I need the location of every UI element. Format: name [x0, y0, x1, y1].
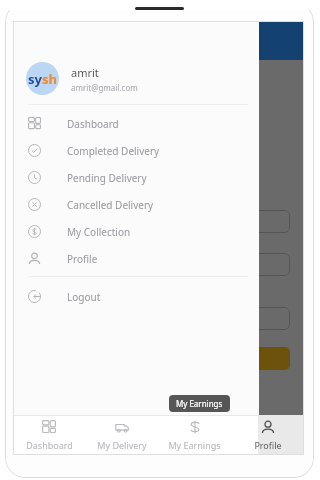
other: Navigation drawer — [13, 21, 259, 455]
button[interactable]: Update Profile — [27, 347, 290, 370]
staticText: My Delivery — [97, 439, 147, 451]
staticText: Profile — [67, 252, 98, 266]
button[interactable]: Profile — [13, 245, 259, 272]
staticText: My Earnings — [176, 398, 223, 409]
button[interactable]: Logout — [13, 283, 259, 310]
button[interactable]: Dashboard — [13, 416, 85, 455]
staticText: Logout — [67, 290, 101, 304]
staticText: My Collection — [67, 225, 131, 239]
button[interactable]: Completed Delivery — [13, 137, 259, 164]
staticText: Profile — [254, 439, 282, 451]
button[interactable]: sy — [13, 62, 259, 95]
staticText: amrit@gmail.com — [71, 82, 138, 93]
staticText: My Earnings — [168, 439, 221, 451]
staticText: Pending Delivery — [67, 171, 147, 185]
button[interactable]: Cancelled Delivery — [13, 191, 259, 218]
button[interactable]: My Delivery — [85, 416, 158, 455]
staticText: Dashboard — [26, 439, 73, 451]
staticText: sh — [42, 70, 57, 88]
button[interactable]: Dashboard — [13, 110, 259, 137]
staticText: Completed Delivery — [67, 144, 160, 158]
staticText: amrit — [71, 65, 99, 80]
staticText: Dashboard — [67, 117, 119, 131]
button[interactable]: My Collection — [13, 218, 259, 245]
staticText: Cancelled Delivery — [67, 198, 154, 212]
button[interactable]: My Earnings — [158, 416, 231, 455]
button[interactable]: Pending Delivery — [13, 164, 259, 191]
staticText: sy — [28, 70, 42, 88]
button[interactable]: Profile — [231, 416, 304, 455]
